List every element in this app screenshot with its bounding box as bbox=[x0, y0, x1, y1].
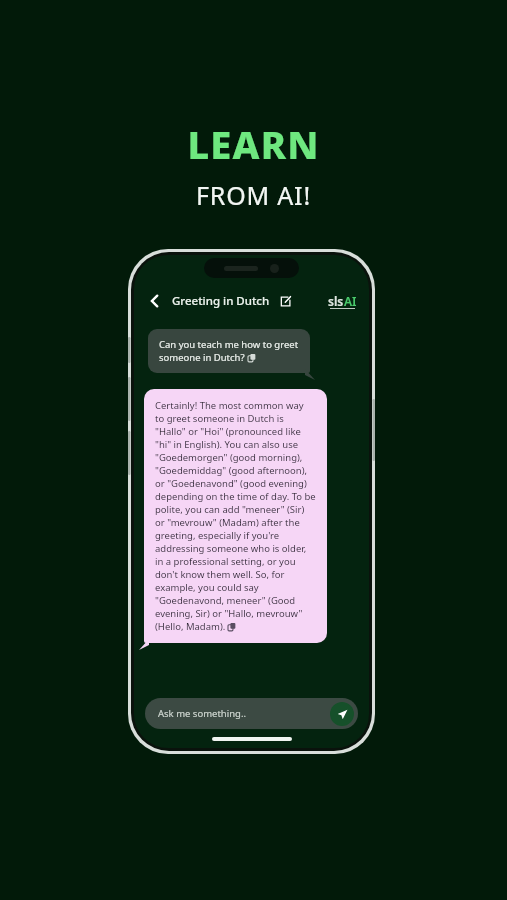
staticText: LEARN bbox=[187, 118, 320, 170]
staticText: someone in Dutch? bbox=[159, 351, 248, 364]
button[interactable]: Send bbox=[330, 702, 354, 726]
button[interactable]: Can you teach me how to greet bbox=[148, 329, 310, 373]
staticText: greeting, especially if you're bbox=[155, 529, 280, 542]
staticText: (Hello, Madam). bbox=[155, 620, 228, 633]
button[interactable]: Certainly! The most common way bbox=[144, 389, 327, 643]
staticText: evening, Sir) or "Hallo, mevrouw" bbox=[155, 607, 303, 620]
staticText: or "Goedenavond" (good evening) bbox=[155, 477, 307, 490]
staticText: "Hallo" or "Hoi" (pronounced like bbox=[155, 425, 301, 438]
button[interactable]: Back bbox=[144, 290, 166, 312]
staticText: example, you could say bbox=[155, 581, 259, 594]
staticText: don't know them well. So, for bbox=[155, 568, 285, 581]
staticText: Can you teach me how to greet bbox=[159, 338, 299, 351]
staticText: Greeting in Dutch bbox=[172, 293, 270, 309]
button[interactable]: Rename chat bbox=[277, 293, 293, 309]
staticText: polite, you can add "meneer" (Sir) bbox=[155, 503, 305, 516]
staticText: "Goedemiddag" (good afternoon), bbox=[155, 464, 308, 477]
staticText: AI bbox=[344, 293, 357, 309]
staticText: sls bbox=[328, 293, 344, 309]
staticText: depending on the time of day. To be bbox=[155, 490, 316, 503]
staticText: or "mevrouw" (Madam) after the bbox=[155, 516, 300, 529]
staticText: Certainly! The most common way bbox=[155, 399, 304, 412]
staticText: FROM AI! bbox=[196, 178, 311, 212]
staticText: to greet someone in Dutch is bbox=[155, 412, 284, 425]
staticText: in a professional setting, or you bbox=[155, 555, 296, 568]
staticText: "hi" in English). You can also use bbox=[155, 438, 299, 451]
button[interactable]: Ask me something.. bbox=[145, 698, 358, 729]
button[interactable]: sls bbox=[328, 293, 357, 310]
staticText: addressing someone who is older, bbox=[155, 542, 307, 555]
staticText: "Goedenavond, meneer" (Good bbox=[155, 594, 296, 607]
staticText: "Goedemorgen" (good morning), bbox=[155, 451, 303, 464]
staticText: Ask me something.. bbox=[158, 707, 246, 720]
